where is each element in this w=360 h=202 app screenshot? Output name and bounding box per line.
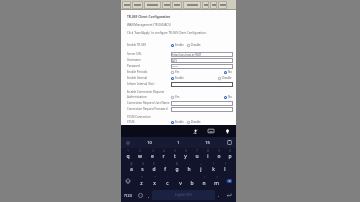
button[interactable]: 3 — [146, 148, 158, 161]
button[interactable]: & — [171, 161, 183, 174]
button[interactable]: , — [145, 188, 152, 202]
button[interactable]: ACS — [171, 58, 233, 63]
staticText: Username — [127, 58, 141, 62]
staticText: b — [190, 180, 194, 187]
button[interactable]: - — [183, 161, 195, 174]
staticText: •••••• — [172, 65, 179, 69]
staticText: p — [228, 153, 232, 160]
staticText: No — [228, 70, 232, 74]
staticText: t — [174, 153, 176, 160]
staticText: s — [141, 166, 144, 173]
button[interactable]: . — [215, 188, 222, 202]
staticText: Click 'Save/Apply' to configure TR-069 C… — [127, 31, 207, 35]
button[interactable]: Keyboard settings — [207, 127, 215, 135]
button[interactable]: Yes — [171, 70, 180, 74]
staticText: http://acs.host.in:9587 — [172, 53, 202, 57]
button[interactable]: 5 — [169, 148, 180, 161]
button[interactable]: 2 — [134, 148, 146, 161]
button[interactable]: 10 — [135, 137, 164, 148]
staticText: d — [152, 166, 156, 173]
button[interactable]: @ — [126, 161, 137, 174]
button[interactable]: 7 — [191, 148, 202, 161]
button[interactable]: ? — [210, 174, 222, 188]
staticText: c — [166, 180, 169, 187]
button[interactable]: Enable — [171, 43, 184, 47]
button[interactable] — [202, 1, 209, 9]
staticText: 6 — [185, 149, 187, 153]
button[interactable]: ( — [207, 161, 219, 174]
button[interactable]: 1 — [122, 148, 134, 161]
button[interactable] — [162, 1, 171, 9]
button[interactable] — [183, 1, 201, 9]
button[interactable]: ; — [186, 174, 198, 188]
button[interactable] — [132, 1, 143, 9]
button[interactable]: : — [174, 174, 186, 188]
staticText: 15 — [205, 140, 210, 145]
button[interactable]: Yes — [171, 95, 180, 99]
button[interactable]: 8 — [202, 148, 213, 161]
staticText: 5 — [174, 149, 176, 153]
button[interactable]: No — [224, 95, 232, 99]
button[interactable]: # — [137, 161, 148, 174]
staticText: n — [202, 180, 206, 187]
button[interactable] — [210, 1, 217, 9]
button[interactable]: 15 — [193, 137, 222, 148]
button[interactable] — [122, 1, 131, 9]
staticText: Password — [127, 64, 140, 68]
staticText: , — [148, 193, 150, 198]
staticText: y — [184, 153, 187, 160]
button[interactable] — [144, 1, 161, 9]
staticText: Enable — [175, 76, 184, 80]
staticText: & — [176, 162, 178, 166]
button[interactable]: Enable — [171, 76, 184, 80]
staticText: * — [141, 176, 143, 180]
button[interactable]: Shift — [121, 174, 135, 188]
staticText: ' — [167, 176, 168, 180]
button[interactable]: Voice typing — [191, 127, 199, 135]
button[interactable]: •••••• — [171, 64, 233, 69]
button[interactable]: + — [195, 161, 207, 174]
button[interactable]: http://acs.host.in:9587 — [171, 52, 233, 57]
staticText: j — [200, 166, 202, 173]
button[interactable] — [171, 101, 233, 106]
staticText: ; — [192, 176, 193, 180]
button[interactable]: $ — [148, 161, 159, 174]
button[interactable]: 0 — [224, 148, 235, 161]
button[interactable] — [171, 107, 233, 112]
button[interactable]: Disable — [187, 43, 201, 47]
staticText: 8 — [207, 149, 209, 153]
button[interactable] — [171, 82, 233, 87]
button[interactable]: 9 — [213, 148, 224, 161]
button[interactable]: No — [224, 70, 232, 74]
button[interactable] — [172, 1, 182, 9]
button[interactable]: Enter — [222, 188, 236, 202]
button[interactable]: * — [135, 174, 148, 188]
staticText: ?123 — [124, 193, 132, 198]
staticText: 9 — [218, 149, 220, 153]
staticText: WAN Management (TR-069/ACS) — [127, 23, 171, 27]
button[interactable]: More options — [121, 137, 135, 148]
button[interactable]: 4 — [158, 148, 169, 161]
button[interactable]: ! — [198, 174, 210, 188]
button[interactable]: Emoji — [135, 188, 145, 202]
button[interactable]: 1 — [164, 137, 193, 148]
staticText: a — [130, 166, 133, 173]
button[interactable]: Clipboard — [222, 137, 236, 148]
button[interactable]: Enable — [171, 120, 184, 124]
staticText: Enable — [175, 120, 184, 124]
button[interactable] — [218, 1, 227, 9]
button[interactable]: Flashlight — [223, 127, 231, 135]
button[interactable]: _ — [159, 161, 171, 174]
button[interactable]: 6 — [180, 148, 191, 161]
staticText: m — [214, 180, 219, 187]
button[interactable]: ' — [161, 174, 174, 188]
button[interactable]: Disable — [218, 76, 232, 80]
button[interactable]: Space — [152, 190, 215, 200]
button[interactable]: " — [148, 174, 161, 188]
button[interactable]: Disable — [187, 120, 201, 124]
button[interactable]: Backspace — [222, 174, 236, 188]
staticText: l — [224, 166, 226, 173]
staticText: g — [175, 166, 179, 173]
button[interactable]: ) — [219, 161, 231, 174]
button[interactable]: ?123 — [121, 188, 135, 202]
